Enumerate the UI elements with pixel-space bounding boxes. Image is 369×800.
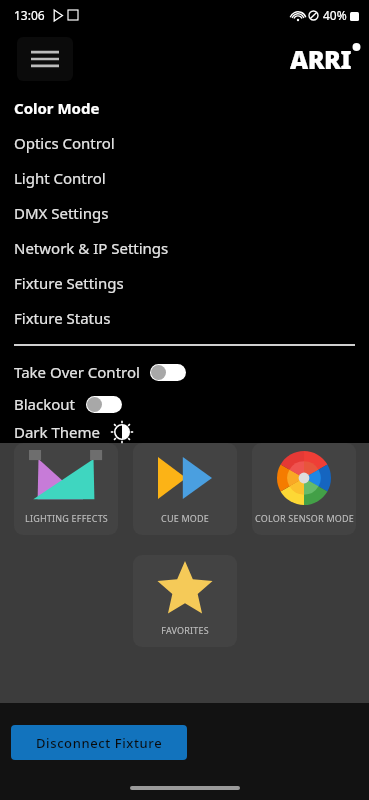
staticText: Blackout	[14, 394, 76, 414]
button[interactable]: Take Over Control	[0, 356, 369, 388]
staticText: ARRI	[290, 42, 352, 76]
button[interactable]: Blackout	[0, 388, 369, 420]
button[interactable]: Fixture Status	[0, 300, 369, 335]
button[interactable]: Color Mode	[0, 90, 369, 125]
staticText: Disconnect Fixture	[36, 734, 163, 752]
staticText: Network & IP Settings	[14, 238, 169, 258]
staticText: Light Control	[14, 168, 106, 188]
button[interactable]: LIGHTING EFFECTS	[14, 443, 118, 535]
staticText: Optics Control	[14, 133, 115, 153]
button[interactable]: Dark Theme	[0, 420, 369, 443]
button[interactable]: Fixture Settings	[0, 265, 369, 300]
staticText: Color Mode	[14, 98, 100, 118]
button[interactable]: COLOR SENSOR MODE	[252, 443, 356, 535]
staticText: DMX Settings	[14, 203, 109, 223]
button[interactable]: Network & IP Settings	[0, 230, 369, 265]
staticText: CUE MODE	[161, 512, 209, 524]
staticText: 13:06	[14, 7, 45, 23]
button[interactable]: Light Control	[0, 160, 369, 195]
button[interactable]: CUE MODE	[133, 443, 237, 535]
button[interactable]: DMX Settings	[0, 195, 369, 230]
staticText: Dark Theme	[14, 422, 101, 442]
staticText: 40%	[323, 7, 347, 23]
button[interactable]: Menu	[17, 37, 73, 81]
staticText: COLOR SENSOR MODE	[255, 512, 354, 524]
button[interactable]: FAVORITES	[133, 555, 237, 647]
staticText: Fixture Status	[14, 308, 111, 328]
button[interactable]: Disconnect Fixture	[11, 725, 187, 760]
staticText: Fixture Settings	[14, 273, 124, 293]
button[interactable]: Optics Control	[0, 125, 369, 160]
staticText: LIGHTING EFFECTS	[25, 512, 108, 524]
staticText: Take Over Control	[14, 362, 140, 382]
staticText: FAVORITES	[161, 624, 209, 636]
